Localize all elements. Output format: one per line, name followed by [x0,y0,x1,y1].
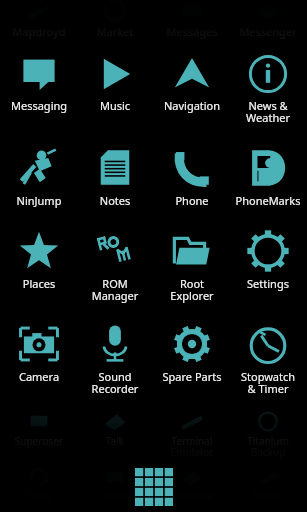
staticText: PhoneMarks [230,193,306,208]
staticText: Camera [1,369,77,384]
button[interactable]: Terminal Emulator [154,408,230,459]
staticText: Notes [77,193,153,208]
button[interactable]: Spare Parts [154,323,230,384]
button[interactable]: Places [1,230,77,291]
staticText: Torch [77,489,153,503]
button[interactable]: ROM Manager [77,230,153,303]
button[interactable]: Messaging [1,54,77,113]
staticText: Translate [154,489,230,503]
staticText: Stopwatch & Timer [230,369,306,396]
staticText: Market [77,24,153,39]
button[interactable]: Root Explorer [154,230,230,303]
staticText: NinJump [1,193,77,208]
button[interactable]: Camera [1,323,77,384]
staticText: ROM Manager [77,276,153,303]
button[interactable]: Stopwatch & Timer [230,323,306,396]
staticText: Superuser [1,434,77,448]
button[interactable]: News & Weather [230,54,306,125]
staticText: Spare Parts [154,369,230,384]
button[interactable]: PhoneMarks [230,147,306,208]
button[interactable]: Phone [154,147,230,208]
button[interactable]: Translate [154,465,230,503]
staticText: Messaging [1,98,77,113]
staticText: Messages [154,24,230,39]
staticText: Phone [154,193,230,208]
button[interactable]: Torch [77,465,153,503]
button[interactable]: NinJump [1,147,77,208]
staticText: Navigation [154,98,230,113]
button[interactable]: Titanium Backup [230,408,306,459]
staticText: Sound Recorder [77,369,153,396]
staticText: Messenger [230,24,306,39]
staticText: Music [77,98,153,113]
button[interactable]: Music [77,54,153,113]
staticText: News & Weather [230,98,306,125]
staticText: Mapdroyd [1,24,77,39]
button[interactable]: Talk [77,408,153,448]
button[interactable]: Settings [230,230,306,291]
button[interactable]: Superuser [1,408,77,448]
button[interactable]: Notes [77,147,153,208]
staticText: Titanium Backup [230,434,306,459]
staticText: Root Explorer [154,276,230,303]
staticText: Terminal Emulator [154,434,230,459]
staticText: Places [1,276,77,291]
button[interactable]: All apps [131,464,177,510]
staticText: Settings [230,276,306,291]
button[interactable]: Navigation [154,54,230,113]
button[interactable]: Sound Recorder [77,323,153,396]
